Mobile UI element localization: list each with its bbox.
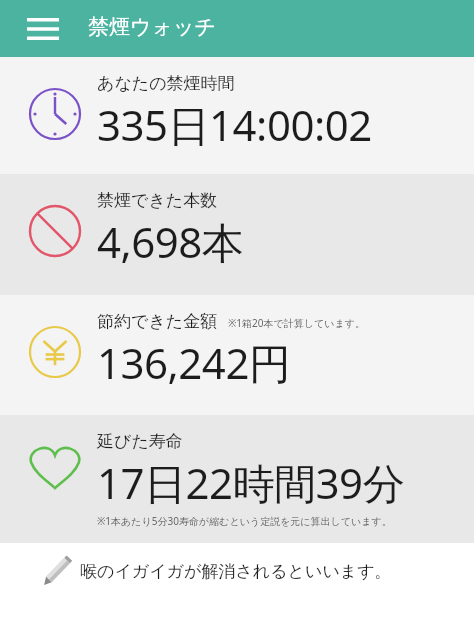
button[interactable]: Menu: [18, 10, 68, 48]
staticText: 17日22時間39分: [97, 454, 405, 511]
button[interactable]: 延びた寿命: [0, 415, 474, 543]
staticText: 136,242円: [97, 334, 291, 391]
staticText: 335日14:00:02: [97, 96, 372, 153]
staticText: ※1本あたり5分30寿命が縮むという定説を元に算出しています。: [97, 514, 392, 528]
staticText: 禁煙できた本数: [97, 190, 218, 211]
staticText: ※1箱20本で計算しています。: [228, 316, 365, 330]
button[interactable]: 節約できた金額: [0, 295, 474, 415]
button[interactable]: 喉のイガイガが解消されるといいます。: [0, 543, 474, 633]
staticText: 4,698本: [97, 213, 244, 270]
staticText: 喉のイガイガが解消されるといいます。: [80, 561, 392, 582]
button[interactable]: 禁煙できた本数: [0, 174, 474, 295]
staticText: 延びた寿命: [97, 431, 183, 452]
staticText: 節約できた金額: [97, 311, 218, 332]
button[interactable]: あなたの禁煙時間: [0, 57, 474, 174]
staticText: あなたの禁煙時間: [97, 73, 235, 94]
staticText: 禁煙ウォッチ: [88, 14, 216, 40]
